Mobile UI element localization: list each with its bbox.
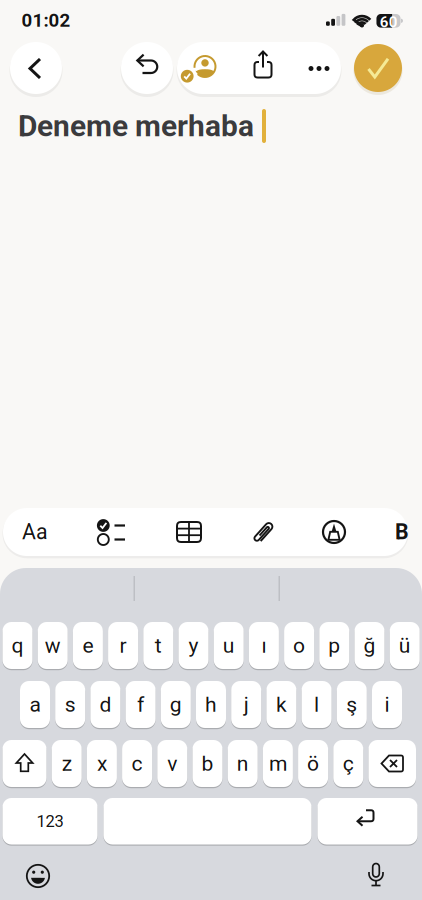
staticText: p <box>328 633 340 658</box>
button[interactable]: j <box>231 681 261 729</box>
button[interactable]: z <box>52 740 82 788</box>
button[interactable]: Done <box>354 44 402 92</box>
button[interactable]: Share <box>232 42 286 94</box>
staticText: Deneme merhaba <box>18 108 254 143</box>
button[interactable]: Undo <box>121 42 173 94</box>
button[interactable]: g <box>161 681 191 729</box>
staticText: s <box>65 692 76 717</box>
button[interactable]: ö <box>298 740 328 788</box>
button[interactable]: w <box>38 622 68 670</box>
button[interactable]: h <box>196 681 226 729</box>
button[interactable]: e <box>73 622 103 670</box>
staticText: 01:02 <box>21 9 70 31</box>
button[interactable]: c <box>122 740 152 788</box>
button[interactable]: ı <box>249 622 279 670</box>
staticText: w <box>45 633 61 658</box>
staticText: h <box>205 692 217 717</box>
button[interactable]: n <box>228 740 258 788</box>
button[interactable]: d <box>90 681 120 729</box>
button[interactable]: k <box>266 681 296 729</box>
staticText: e <box>82 633 93 658</box>
button[interactable]: i <box>372 681 402 729</box>
staticText: ö <box>307 751 319 776</box>
staticText: l <box>314 692 319 717</box>
button[interactable]: ç <box>333 740 363 788</box>
button[interactable]: Shift <box>2 740 46 788</box>
staticText: c <box>132 751 143 776</box>
button[interactable]: l <box>302 681 332 729</box>
staticText: j <box>244 692 249 717</box>
button[interactable]: More <box>286 42 341 94</box>
button[interactable]: Markup <box>306 508 362 556</box>
button[interactable]: q <box>2 622 32 670</box>
staticText: v <box>167 751 177 776</box>
staticText: g <box>170 692 182 717</box>
staticText: m <box>269 751 287 776</box>
button[interactable]: Return <box>317 798 417 846</box>
staticText: o <box>293 633 305 658</box>
button[interactable]: Attach <box>236 508 292 556</box>
button[interactable]: s <box>55 681 85 729</box>
button[interactable]: f <box>126 681 156 729</box>
button[interactable]: x <box>87 740 117 788</box>
staticText: r <box>120 633 127 658</box>
button[interactable]: ğ <box>354 622 384 670</box>
button[interactable]: Format <box>5 508 65 556</box>
staticText: i <box>384 692 389 717</box>
button[interactable]: ş <box>337 681 367 729</box>
button[interactable]: y <box>178 622 208 670</box>
button[interactable]: Delete <box>368 740 416 788</box>
staticText: ç <box>343 751 354 776</box>
button[interactable]: Table <box>161 508 217 556</box>
staticText: z <box>62 751 72 776</box>
staticText: q <box>11 633 23 658</box>
staticText: n <box>237 751 249 776</box>
staticText: b <box>201 751 213 776</box>
staticText: B <box>395 519 409 544</box>
button[interactable]: m <box>263 740 293 788</box>
staticText: f <box>137 692 144 717</box>
button[interactable]: a <box>20 681 50 729</box>
button[interactable]: Bold <box>387 508 417 556</box>
button[interactable]: Space <box>103 798 311 846</box>
button[interactable]: t <box>143 622 173 670</box>
staticText: x <box>97 751 107 776</box>
button[interactable]: b <box>192 740 222 788</box>
staticText: Aa <box>22 519 48 544</box>
staticText: ş <box>346 692 357 717</box>
button[interactable]: ü <box>390 622 420 670</box>
button[interactable]: v <box>157 740 187 788</box>
staticText: u <box>223 633 235 658</box>
staticText: k <box>276 692 287 717</box>
staticText: 123 <box>36 812 63 831</box>
staticText: y <box>188 633 198 658</box>
button[interactable]: Checklist <box>83 508 139 556</box>
button[interactable]: Numbers <box>2 798 97 846</box>
staticText: 60 <box>380 13 398 31</box>
button[interactable]: Back <box>10 42 62 94</box>
button[interactable]: o <box>284 622 314 670</box>
button[interactable]: p <box>319 622 349 670</box>
button[interactable]: r <box>108 622 138 670</box>
button[interactable]: Collaborate <box>177 42 232 94</box>
staticText: ı <box>261 633 266 658</box>
button[interactable]: u <box>214 622 244 670</box>
staticText: t <box>155 633 162 658</box>
staticText: ü <box>399 633 411 658</box>
staticText: a <box>29 692 40 717</box>
button[interactable]: Dictate <box>356 855 396 895</box>
staticText: ğ <box>363 633 375 658</box>
staticText: d <box>99 692 111 717</box>
button[interactable]: Emoji <box>18 856 58 896</box>
